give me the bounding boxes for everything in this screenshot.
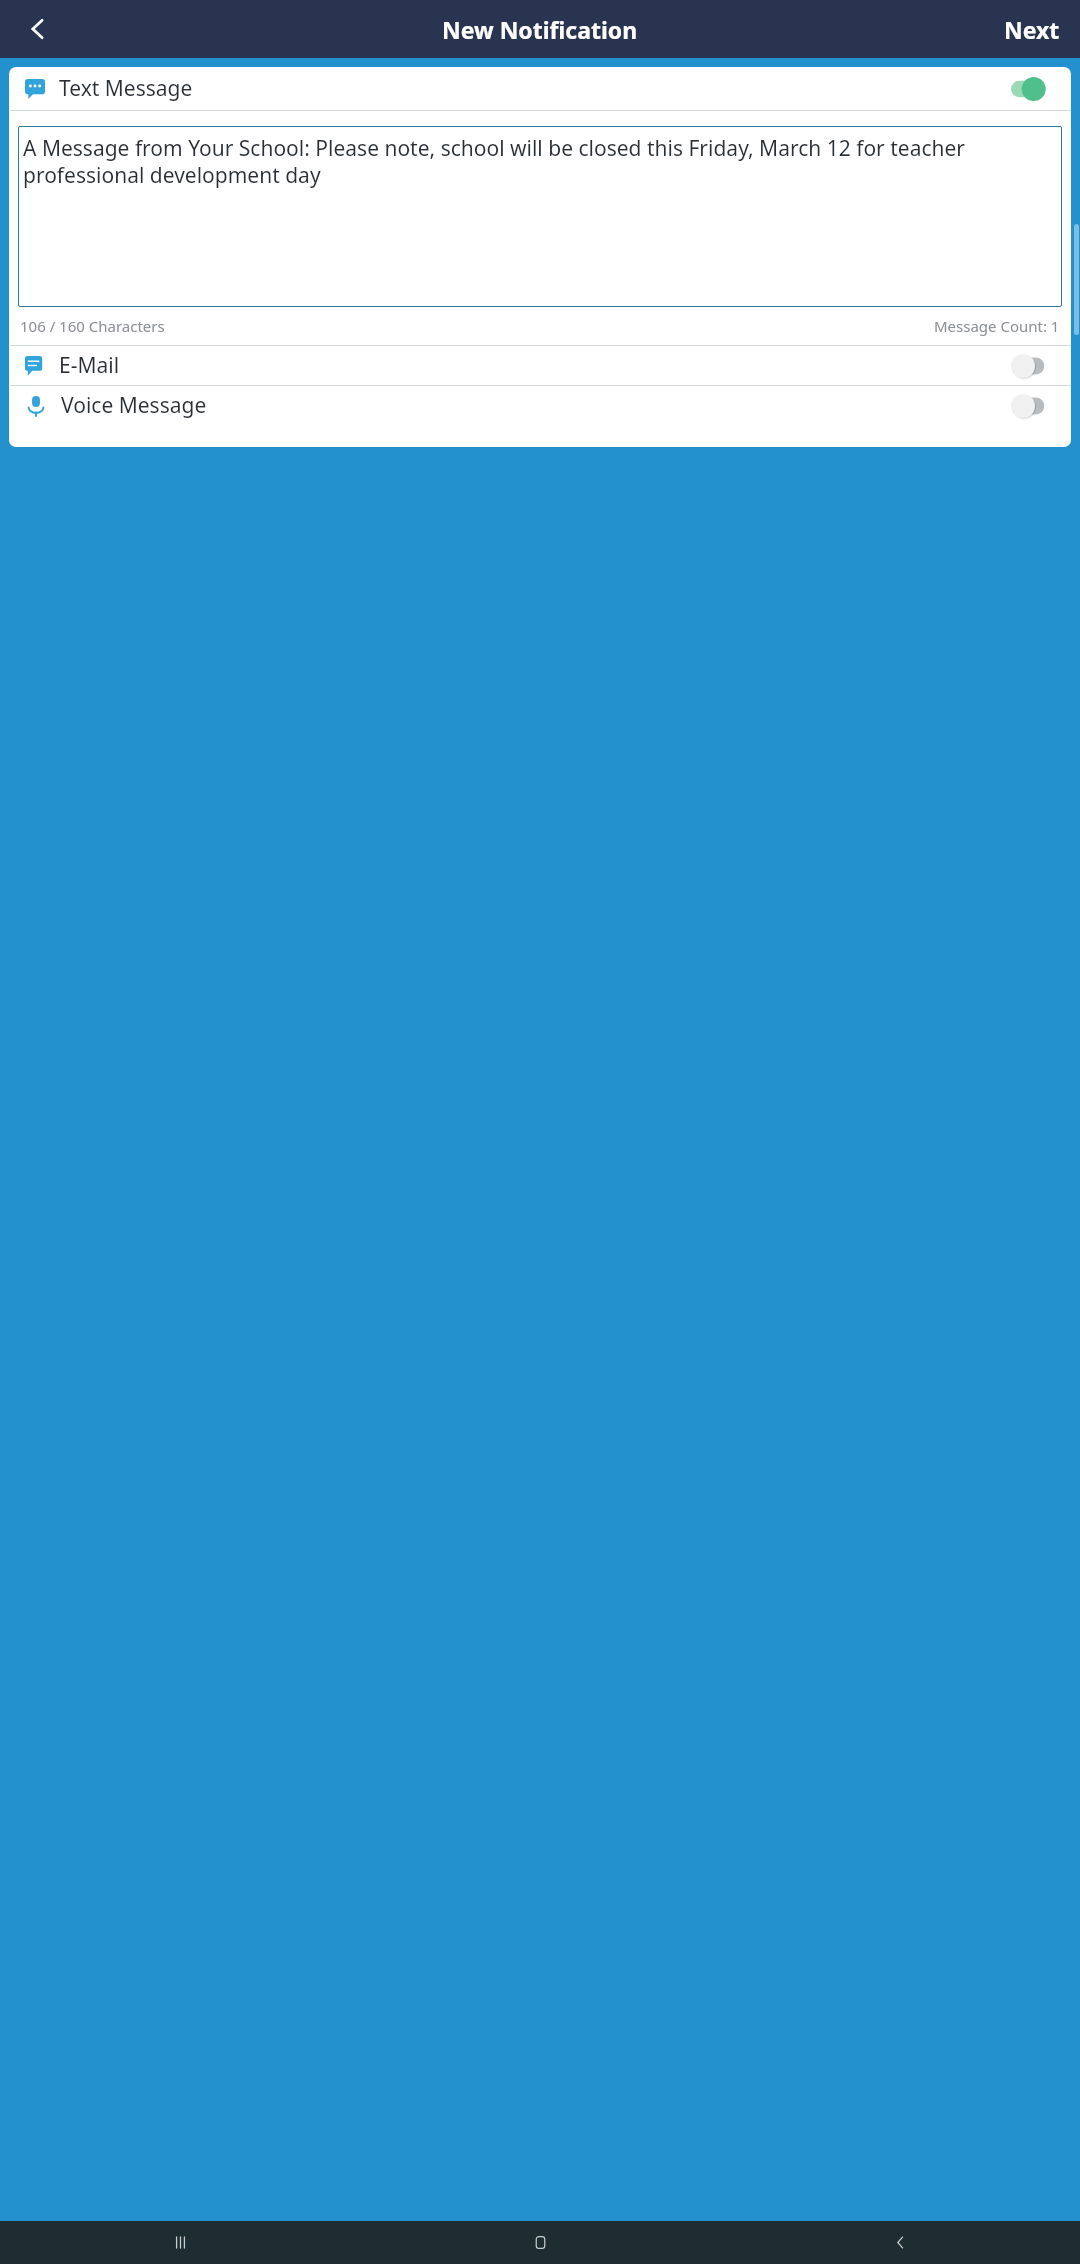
staticText: New Notification [442,14,638,45]
staticText: Next [1004,14,1060,45]
staticText: Text Message [59,74,193,103]
button[interactable]: Voice Message [9,386,1071,425]
button[interactable]: Toggle off [1011,354,1045,378]
button[interactable]: Back [720,2221,1080,2264]
button[interactable]: Recent apps [0,2221,360,2264]
staticText: A Message from Your School: Please note,… [23,134,1058,189]
staticText: Voice Message [61,391,207,420]
button[interactable]: Next [984,6,1080,53]
staticText: E-Mail [59,351,120,380]
button[interactable]: A Message from Your School: Please note,… [18,126,1062,307]
staticText: 106 / 160 Characters [20,316,165,336]
button[interactable]: E-Mail [9,346,1071,385]
button[interactable]: Toggle off [1011,394,1045,418]
button[interactable]: Back [14,5,62,53]
button[interactable]: Home [360,2221,720,2264]
button[interactable]: Text Message [9,67,1071,110]
staticText: Message Count: 1 [934,316,1060,336]
button[interactable]: Text Message enabled [1011,77,1045,101]
